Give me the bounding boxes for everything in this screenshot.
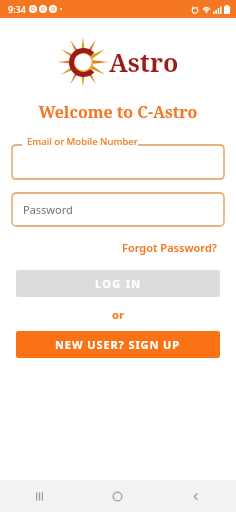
staticText: 9:34	[8, 3, 26, 15]
staticText: Welcome to C-Astro	[0, 101, 236, 123]
staticText: Password	[23, 202, 73, 217]
button[interactable]: Back	[157, 480, 236, 512]
staticText: Astro	[109, 45, 179, 79]
button[interactable]: Forgot Password?	[103, 237, 236, 258]
button[interactable]: NEW USER? SIGN UP	[16, 331, 220, 358]
staticText: or	[0, 307, 236, 322]
staticText: NEW USER? SIGN UP	[55, 337, 181, 352]
button[interactable]: Recent apps	[0, 480, 78, 512]
button[interactable]: Password	[12, 193, 224, 226]
button[interactable]: LOG IN	[16, 270, 220, 297]
staticText: Email or Mobile Number	[27, 135, 138, 148]
staticText: LOG IN	[95, 276, 142, 291]
button[interactable]: Email or Mobile Number	[12, 139, 224, 179]
button[interactable]: Home	[78, 480, 157, 512]
staticText: Forgot Password?	[122, 240, 217, 255]
